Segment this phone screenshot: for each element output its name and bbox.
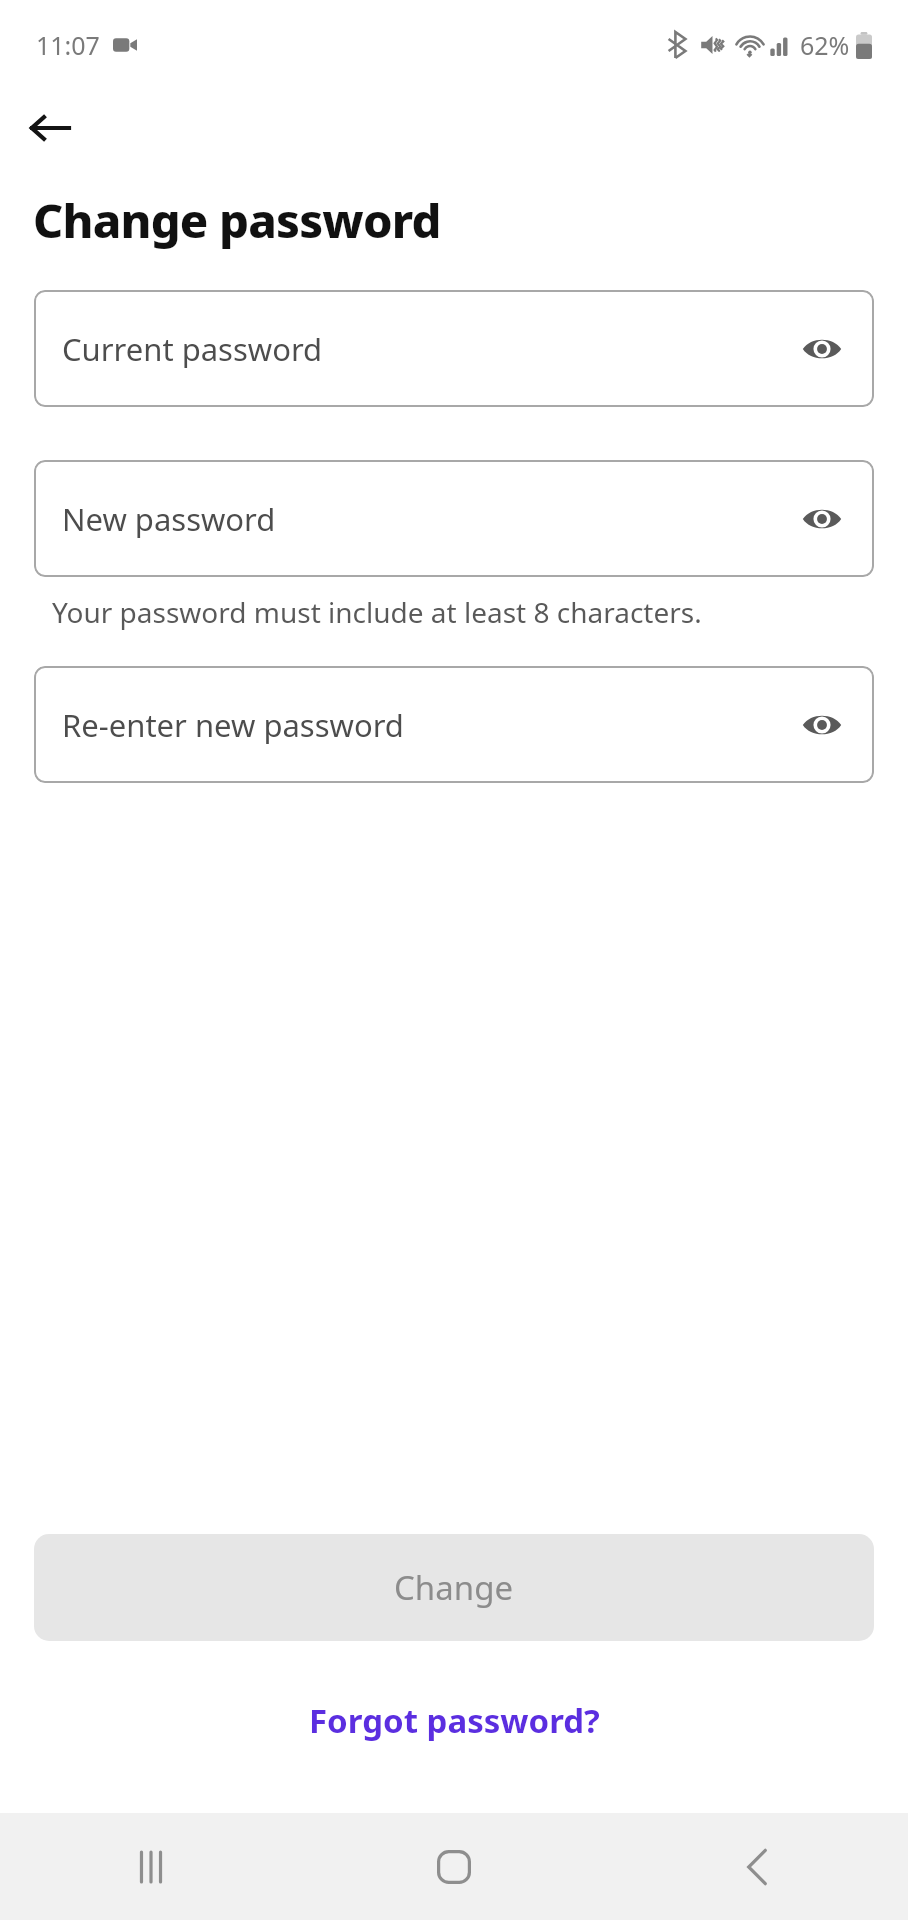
staticText: Re-enter new password [62,704,796,746]
staticText: Forgot password? [309,1698,600,1743]
button[interactable]: Show password [796,493,848,545]
staticText: Change password [33,188,441,252]
staticText: Your password must include at least 8 ch… [52,593,702,631]
button[interactable]: New password [34,460,874,577]
staticText: Current password [62,328,796,370]
staticText: 11:07 [36,28,100,62]
button[interactable]: Forgot password? [285,1688,624,1753]
staticText: New password [62,498,796,540]
button[interactable]: Home [302,1813,605,1920]
button[interactable]: Re-enter new password [34,666,874,783]
staticText: Change [394,1565,514,1610]
button[interactable]: Back [605,1813,908,1920]
button[interactable]: Recent apps [0,1813,302,1920]
button[interactable]: Current password [34,290,874,407]
staticText: 62% [800,28,850,62]
button[interactable]: Show password [796,323,848,375]
button[interactable]: Change [34,1534,874,1641]
button[interactable]: Show password [796,699,848,751]
button[interactable]: Back [18,96,82,160]
